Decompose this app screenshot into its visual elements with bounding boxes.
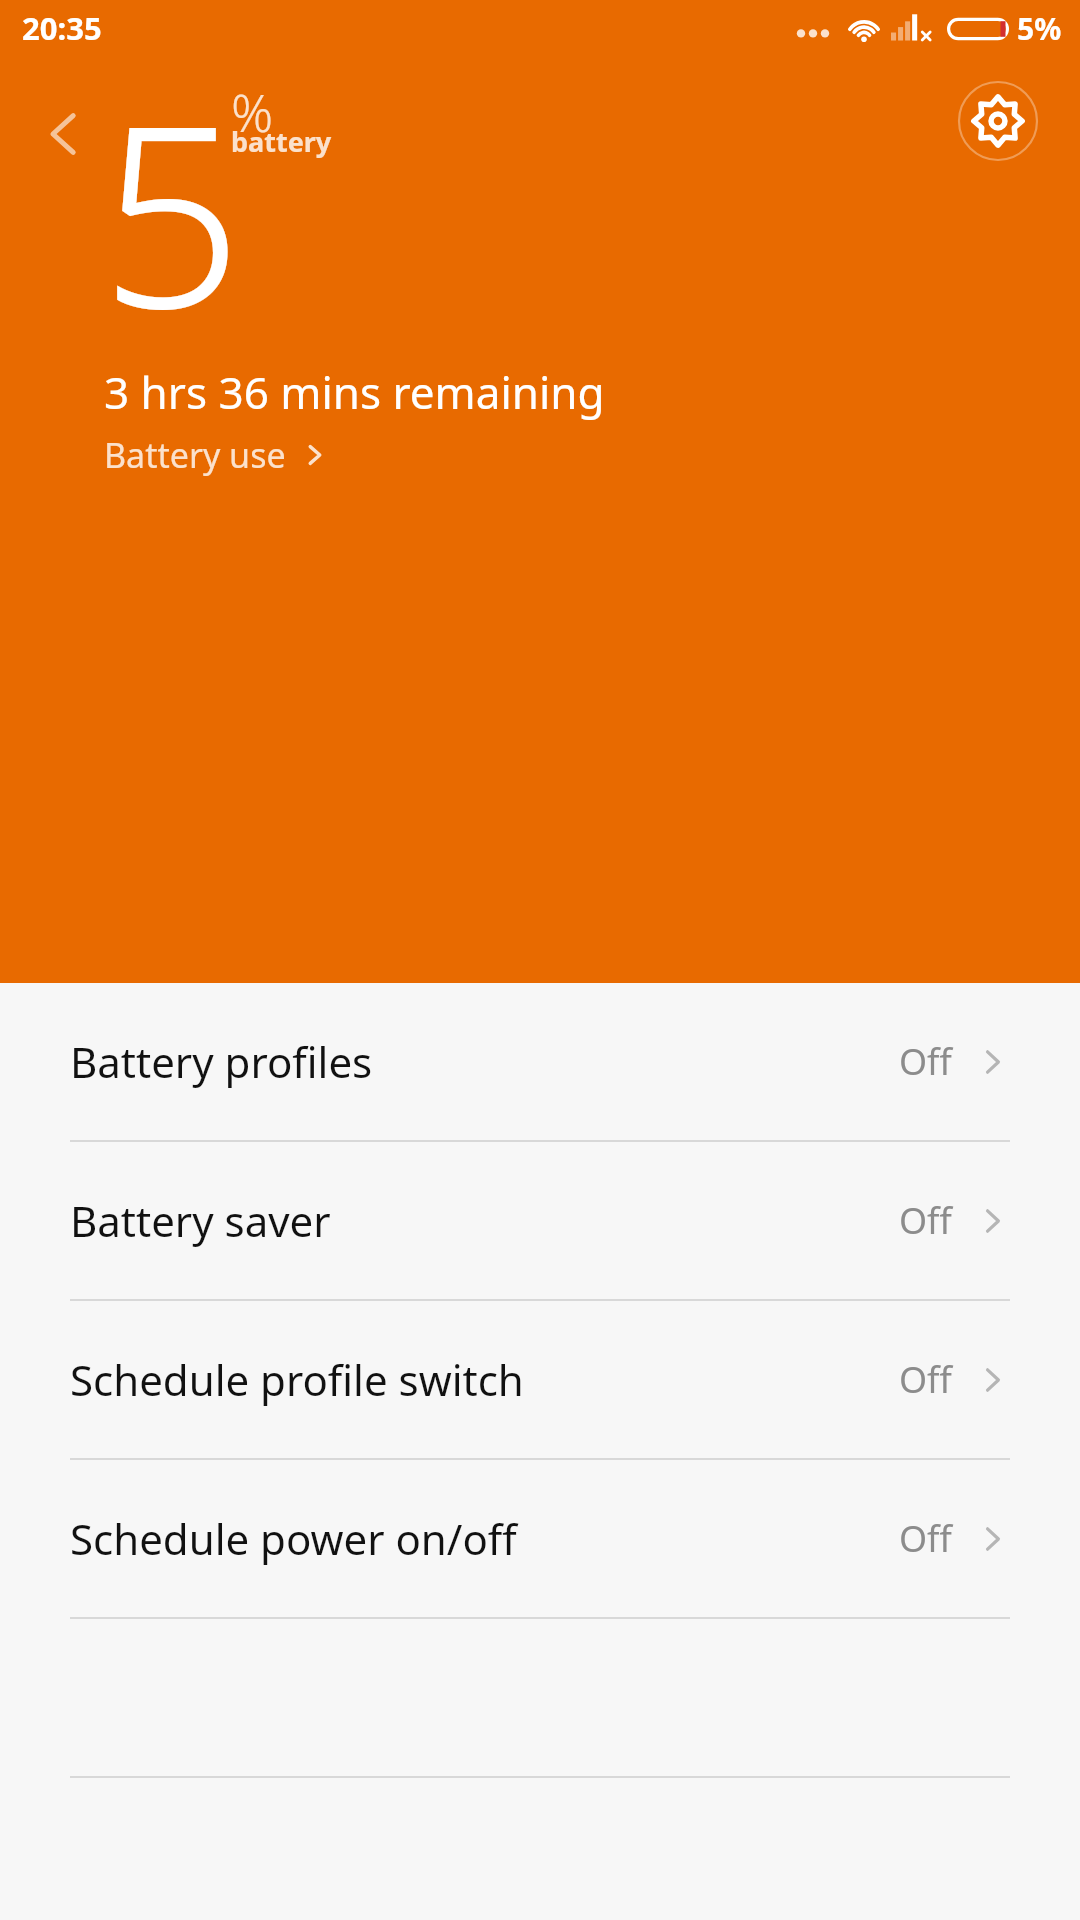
staticText: Schedule profile switch: [70, 1351, 899, 1408]
staticText: 20:35: [22, 7, 102, 49]
staticText: 5%: [1017, 8, 1062, 49]
staticText: Battery use: [104, 432, 286, 478]
button[interactable]: Battery use: [104, 424, 330, 486]
staticText: Off: [899, 1196, 952, 1245]
staticText: Battery profiles: [70, 1033, 899, 1090]
button[interactable]: Battery settings: [957, 80, 1039, 162]
button[interactable]: Back: [28, 98, 100, 170]
button[interactable]: Schedule power on/off: [0, 1460, 1080, 1617]
button[interactable]: Schedule profile switch: [0, 1301, 1080, 1458]
staticText: %: [231, 76, 274, 147]
staticText: 5: [100, 40, 243, 381]
staticText: battery: [231, 123, 332, 160]
button[interactable]: Battery profiles: [0, 983, 1080, 1140]
staticText: Schedule power on/off: [70, 1510, 899, 1567]
staticText: Off: [899, 1355, 952, 1404]
staticText: Off: [899, 1514, 952, 1563]
button[interactable]: Battery saver: [0, 1142, 1080, 1299]
staticText: Off: [899, 1037, 952, 1086]
staticText: 3 hrs 36 mins remaining: [104, 362, 605, 422]
staticText: Battery saver: [70, 1192, 899, 1249]
